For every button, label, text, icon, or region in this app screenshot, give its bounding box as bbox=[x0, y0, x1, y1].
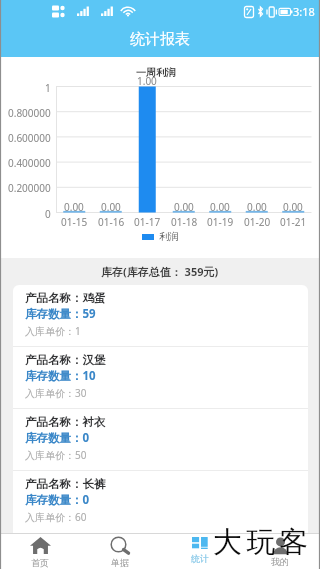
button[interactable]: 首页 bbox=[0, 533, 80, 569]
staticText: 0.00 bbox=[174, 200, 194, 212]
staticText: 入库单价：60 bbox=[25, 510, 87, 524]
staticText: 01-21 bbox=[280, 215, 307, 227]
staticText: 0.00 bbox=[247, 200, 267, 212]
staticText: 库存数量：59 bbox=[25, 306, 96, 322]
staticText: 01-20 bbox=[244, 215, 271, 227]
staticText: 0.200000 bbox=[8, 181, 51, 193]
staticText: 产品名称：鸡蛋 bbox=[25, 291, 106, 305]
staticText: 利润 bbox=[159, 230, 179, 243]
staticText: 首页 bbox=[31, 557, 49, 568]
staticText: 库存(库存总值： 359元) bbox=[101, 264, 219, 279]
button[interactable]: 单据 bbox=[80, 533, 160, 569]
staticText: 01-17 bbox=[134, 215, 161, 227]
staticText: 产品名称：汉堡 bbox=[25, 353, 106, 367]
staticText: 一周利润 bbox=[136, 66, 176, 79]
button[interactable]: 产品名称：汉堡 bbox=[13, 347, 308, 409]
staticText: 库存数量：10 bbox=[25, 368, 96, 384]
button[interactable]: 我的 bbox=[240, 533, 320, 569]
staticText: 库存数量：0 bbox=[25, 430, 90, 446]
button[interactable]: 统计 bbox=[160, 533, 240, 569]
staticText: 入库单价：1 bbox=[25, 324, 81, 338]
staticText: 3:18 bbox=[293, 4, 315, 19]
staticText: 我的 bbox=[271, 556, 289, 567]
staticText: 0 bbox=[45, 207, 51, 219]
staticText: 大玩客 bbox=[213, 524, 313, 561]
staticText: 统计 bbox=[191, 553, 209, 564]
staticText: 01-19 bbox=[207, 215, 234, 227]
staticText: 0.600000 bbox=[8, 131, 51, 143]
button[interactable]: 产品名称：鸡蛋 bbox=[13, 285, 308, 347]
staticText: 产品名称：衬衣 bbox=[25, 415, 106, 429]
staticText: 01-18 bbox=[171, 215, 198, 227]
staticText: 01-16 bbox=[98, 215, 125, 227]
staticText: 产品名称：长裤 bbox=[25, 477, 106, 491]
button[interactable]: 产品名称：长裤 bbox=[13, 471, 308, 533]
staticText: 01-15 bbox=[61, 215, 88, 227]
staticText: 0.800000 bbox=[8, 106, 51, 118]
staticText: 0.00 bbox=[101, 200, 121, 212]
staticText: 0.00 bbox=[210, 200, 230, 212]
staticText: 库存数量：0 bbox=[25, 492, 90, 508]
staticText: 1 bbox=[45, 81, 51, 93]
staticText: 0.400000 bbox=[8, 156, 51, 168]
staticText: 0.00 bbox=[64, 200, 84, 212]
button[interactable]: 产品名称：衬衣 bbox=[13, 409, 308, 471]
staticText: 统计报表 bbox=[130, 30, 190, 49]
staticText: 入库单价：50 bbox=[25, 448, 87, 462]
staticText: 0.00 bbox=[283, 200, 303, 212]
staticText: 1.00 bbox=[137, 74, 157, 86]
staticText: 入库单价：30 bbox=[25, 386, 87, 400]
staticText: 单据 bbox=[111, 557, 129, 568]
